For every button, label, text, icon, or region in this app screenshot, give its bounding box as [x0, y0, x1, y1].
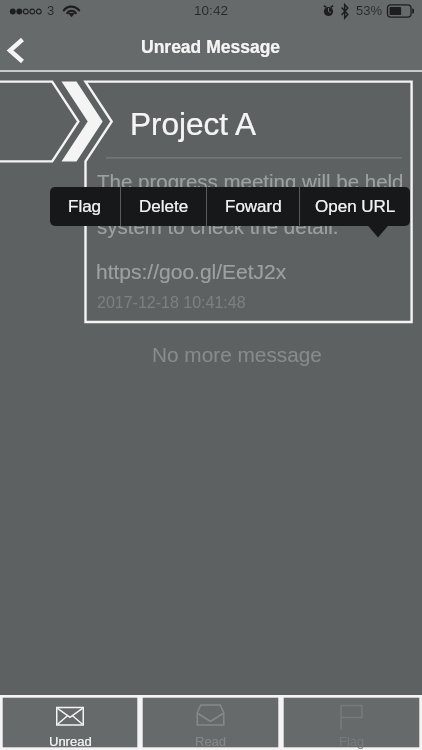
- button[interactable]: Open URL: [300, 187, 410, 226]
- staticText: The progress meeting will be held on 201…: [97, 170, 409, 239]
- staticText: Read: [195, 734, 227, 749]
- staticText: 10:42: [0, 3, 422, 18]
- staticText: Foward: [225, 197, 282, 216]
- staticText: Open URL: [315, 197, 396, 216]
- staticText: No more message: [152, 343, 322, 366]
- staticText: Flag: [339, 734, 365, 749]
- staticText: 2017-12-18 10:41:48: [97, 294, 246, 312]
- staticText: Unread Message: [141, 37, 281, 57]
- button[interactable]: Foward: [207, 187, 299, 226]
- button[interactable]: Flag: [281, 695, 422, 750]
- staticText: Unread: [49, 734, 92, 749]
- button[interactable]: https://goo.gl/EetJ2x: [96, 260, 287, 283]
- staticText: 53%: [356, 3, 383, 18]
- staticText: 3: [47, 3, 55, 18]
- staticText: Project A: [130, 106, 257, 141]
- staticText: Flag: [68, 197, 102, 216]
- button[interactable]: Unread: [0, 695, 140, 750]
- button[interactable]: Back: [0, 25, 44, 69]
- button[interactable]: Read: [140, 695, 281, 750]
- button[interactable]: Delete: [121, 187, 206, 226]
- staticText: Delete: [139, 197, 189, 216]
- button[interactable]: Flag: [50, 187, 120, 226]
